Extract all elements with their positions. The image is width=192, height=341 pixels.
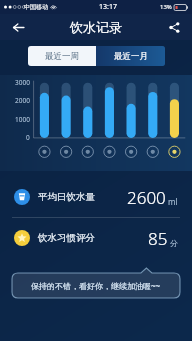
staticText: 分 (170, 238, 178, 248)
staticText: 饮水习惯评分 (38, 232, 95, 244)
staticText: 2000 (15, 96, 30, 105)
staticText: ml (168, 196, 178, 207)
button[interactable]: 最近一月 (96, 46, 165, 66)
button[interactable]: Back (6, 15, 30, 39)
button[interactable]: Share (162, 15, 186, 39)
staticText: 2600 (127, 186, 166, 209)
button[interactable]: 保持的不错，看好你，继续加油喔~~ (12, 268, 180, 298)
staticText: 保持的不错，看好你，继续加油喔~~ (31, 280, 161, 291)
button[interactable]: 平均日饮水量 (0, 183, 192, 211)
button[interactable]: 饮水习惯评分 (0, 224, 192, 252)
staticText: 最近一周 (45, 51, 79, 62)
staticText: 13:17 (99, 2, 117, 12)
staticText: 85 (148, 227, 168, 250)
staticText: 中国移动 (24, 3, 48, 11)
staticText: 13% (160, 3, 172, 11)
staticText: 最近一月 (114, 51, 148, 62)
button[interactable]: 最近一周 (28, 46, 96, 66)
staticText: 3000 (15, 78, 30, 87)
staticText: 饮水记录 (70, 19, 122, 35)
staticText: 1000 (15, 115, 30, 124)
staticText: 平均日饮水量 (38, 191, 95, 203)
staticText: 0 (26, 133, 30, 142)
